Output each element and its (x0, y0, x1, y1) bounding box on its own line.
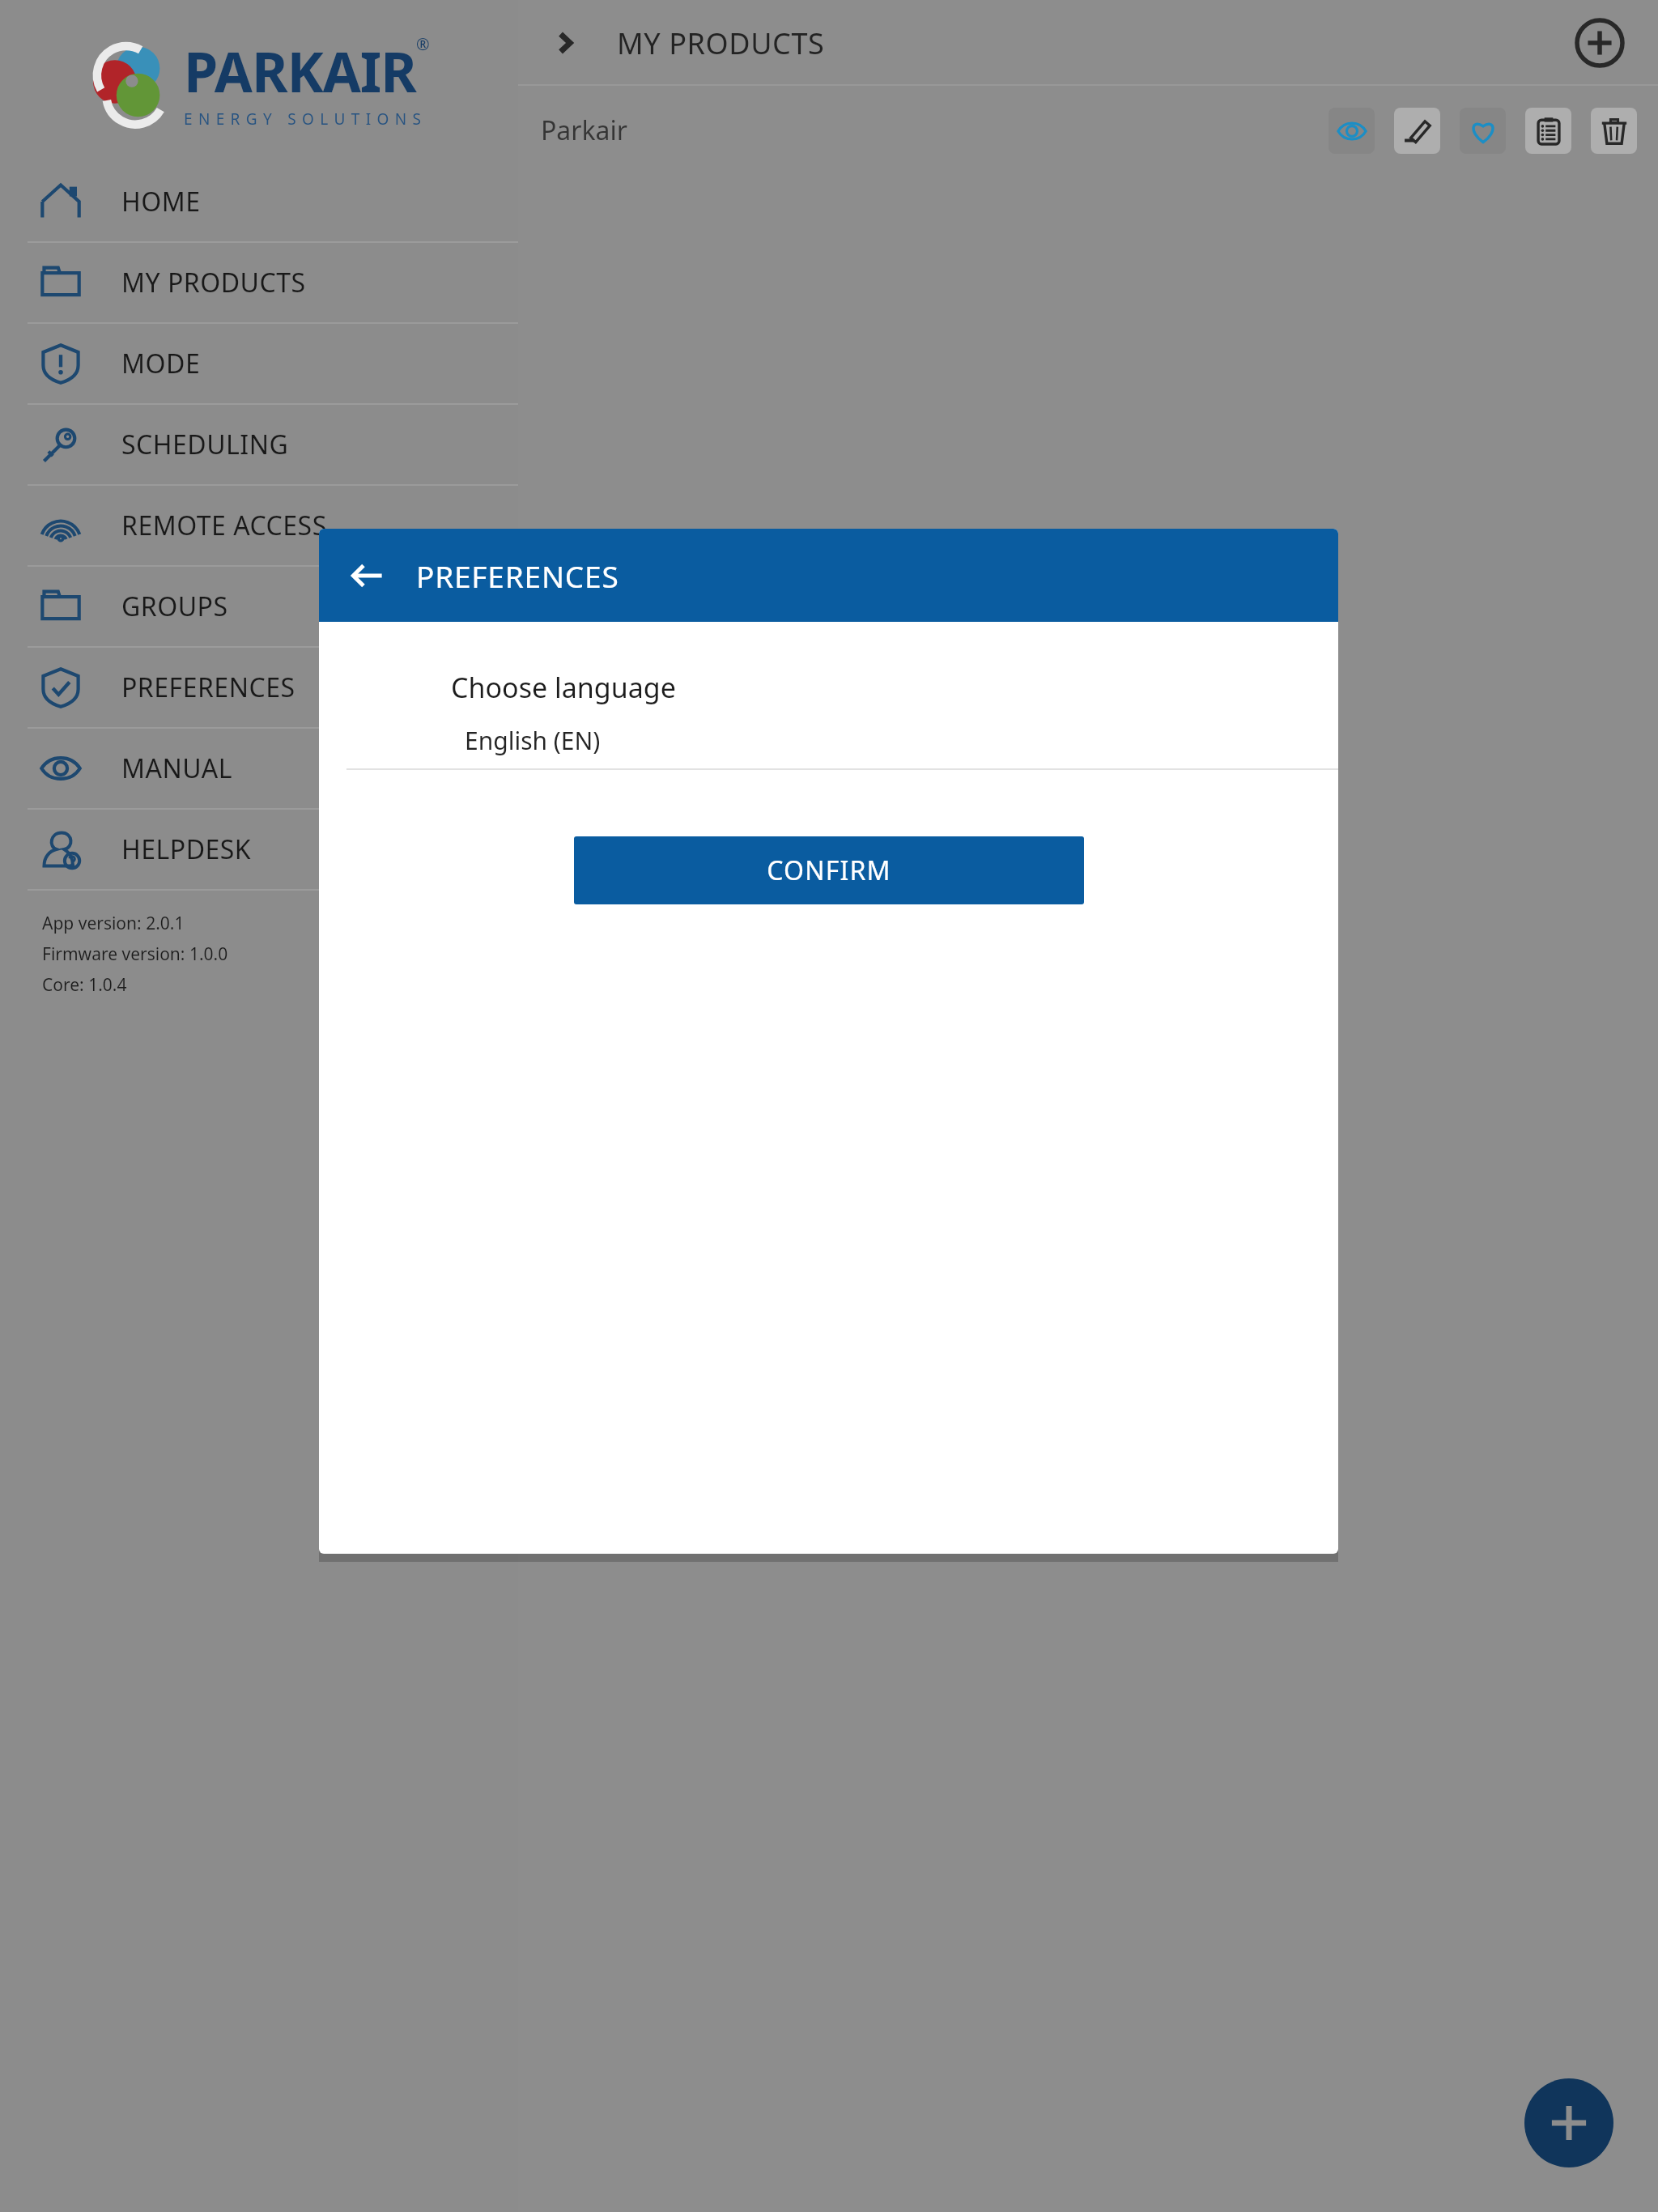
staticText: Choose language (451, 669, 676, 706)
button[interactable]: Parkair (518, 86, 1658, 175)
button[interactable]: Add product (1524, 2078, 1613, 2167)
staticText: Core: 1.0.4 (42, 973, 127, 997)
staticText: PREFERENCES (121, 670, 295, 705)
button[interactable]: Favourite (1460, 108, 1506, 154)
button[interactable]: Expand menu (536, 14, 594, 72)
staticText: PREFERENCES (416, 555, 619, 596)
staticText: ® (416, 33, 430, 55)
button[interactable]: MODE (0, 324, 518, 403)
staticText: HOME (121, 184, 201, 219)
staticText: Parkair (541, 113, 628, 148)
button[interactable]: SCHEDULING (0, 405, 518, 484)
button[interactable]: REMOTE ACCESS (0, 486, 518, 565)
staticText: MY PRODUCTS (617, 23, 825, 63)
staticText: App version: 2.0.1 (42, 912, 185, 935)
staticText: MY PRODUCTS (121, 265, 306, 300)
staticText: HELPDESK (121, 832, 252, 867)
staticText: English (EN) (465, 724, 601, 757)
button[interactable]: CONFIRM (574, 836, 1084, 904)
staticText: PARKAIR (184, 33, 416, 108)
staticText: SCHEDULING (121, 427, 289, 462)
button[interactable]: English (EN) (319, 724, 1338, 768)
staticText: Firmware version: 1.0.0 (42, 942, 228, 966)
button[interactable]: HOME (0, 162, 518, 241)
staticText: E N E R G Y S O L U T I O N S (184, 108, 423, 130)
button[interactable]: View (1329, 108, 1375, 154)
button[interactable]: Back (335, 543, 400, 608)
button[interactable]: GROUPS (0, 567, 518, 646)
button[interactable]: Add (1566, 9, 1634, 77)
button[interactable]: MANUAL (0, 729, 518, 808)
staticText: GROUPS (121, 589, 228, 624)
button[interactable]: Delete (1591, 108, 1637, 154)
staticText: MANUAL (121, 751, 233, 786)
button[interactable]: Edit (1394, 108, 1440, 154)
button[interactable]: HELPDESK (0, 810, 518, 889)
staticText: CONFIRM (767, 853, 891, 888)
staticText: MODE (121, 346, 201, 381)
button[interactable]: Log (1525, 108, 1571, 154)
button[interactable]: PREFERENCES (0, 648, 518, 727)
staticText: REMOTE ACCESS (121, 508, 327, 543)
button[interactable]: MY PRODUCTS (0, 243, 518, 322)
